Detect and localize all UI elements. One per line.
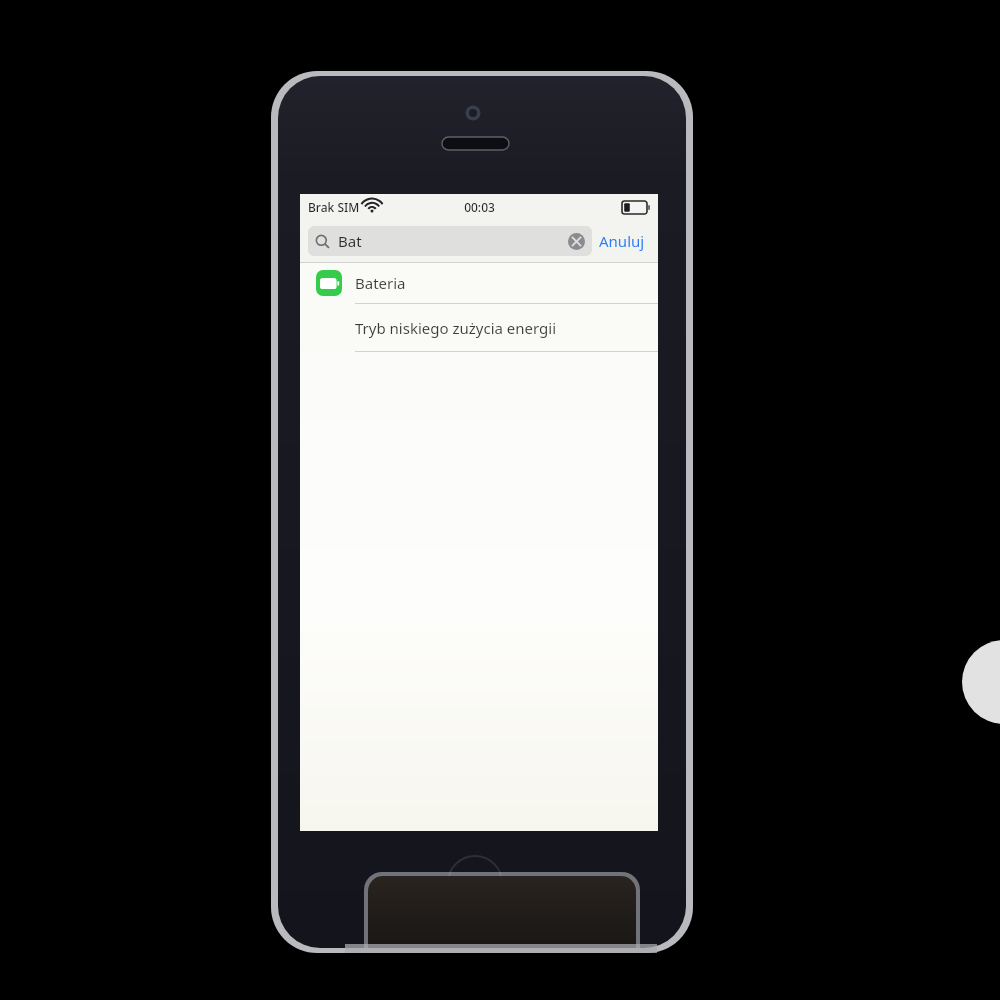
staticText: 00:03 (464, 199, 495, 215)
button[interactable]: Wyczyść (568, 233, 585, 250)
button[interactable]: Anuluj (592, 227, 652, 255)
button[interactable]: Bat (308, 226, 592, 256)
staticText: Brak SIM (308, 199, 360, 215)
staticText: Bateria (355, 273, 406, 293)
staticText: Tryb niskiego zużycia energii (355, 318, 557, 338)
button[interactable]: Tryb niskiego zużycia energii (300, 304, 658, 351)
staticText: Anuluj (599, 231, 645, 251)
staticText: Bat (338, 231, 362, 251)
button[interactable]: Bateria (300, 263, 658, 303)
